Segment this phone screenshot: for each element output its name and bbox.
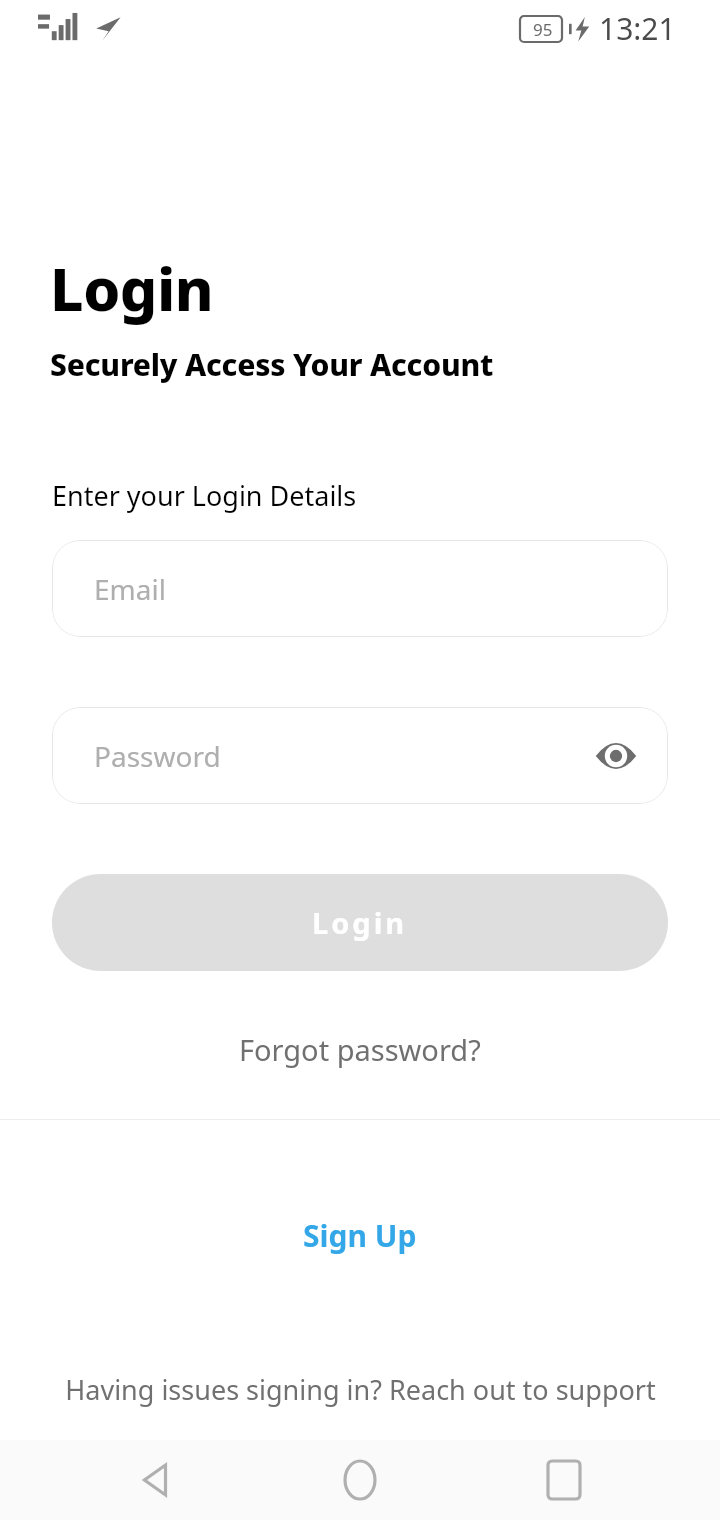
staticText: Login [50, 248, 214, 328]
button[interactable]: Forgot password? [223, 1024, 497, 1075]
staticText: 95 [533, 18, 553, 41]
staticText: Password [94, 737, 221, 775]
button[interactable]: Having issues signing in? Reach out to s… [0, 1371, 720, 1408]
button[interactable]: Show password [590, 730, 642, 782]
staticText: Forgot password? [239, 1030, 481, 1069]
staticText: Having issues signing in? Reach out to s… [65, 1371, 656, 1408]
button[interactable]: Sign Up [283, 1207, 437, 1264]
button[interactable]: Back [108, 1440, 204, 1520]
button[interactable]: Password [52, 707, 668, 804]
staticText: Sign Up [303, 1215, 417, 1256]
button[interactable]: Recent apps [516, 1440, 612, 1520]
button[interactable]: Login [52, 874, 668, 971]
button[interactable]: Home [312, 1440, 408, 1520]
staticText: Securely Access Your Account [50, 344, 494, 385]
staticText: 13:21 [599, 8, 676, 49]
staticText: Login [312, 903, 408, 942]
button[interactable]: Email [52, 540, 668, 637]
staticText: Email [94, 570, 166, 608]
staticText: Enter your Login Details [52, 477, 357, 514]
